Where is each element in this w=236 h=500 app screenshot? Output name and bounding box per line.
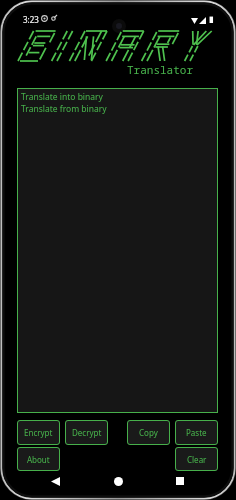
button[interactable]: Translate into binary [21,91,218,413]
staticText: Decrypt [72,427,102,438]
staticText: Copy [139,427,158,438]
button[interactable]: Decrypt [65,420,108,445]
button[interactable]: Recent apps [169,470,191,492]
staticText: Paste [186,427,207,438]
staticText: Encrypt [24,427,53,438]
button[interactable]: Copy [127,420,170,445]
button[interactable]: Home [107,470,129,492]
button[interactable]: Clear [175,447,218,471]
button[interactable]: Paste [175,420,218,445]
staticText: Translator [127,62,193,77]
button[interactable]: Encrypt [17,420,60,445]
button[interactable]: About [17,447,60,471]
staticText: 3:23 [23,14,39,25]
staticText: About [27,454,50,465]
button[interactable]: Back [44,470,66,492]
staticText: Clear [187,454,207,465]
staticText: Translate into binary [21,91,103,103]
staticText: Translate from binary [21,103,107,115]
